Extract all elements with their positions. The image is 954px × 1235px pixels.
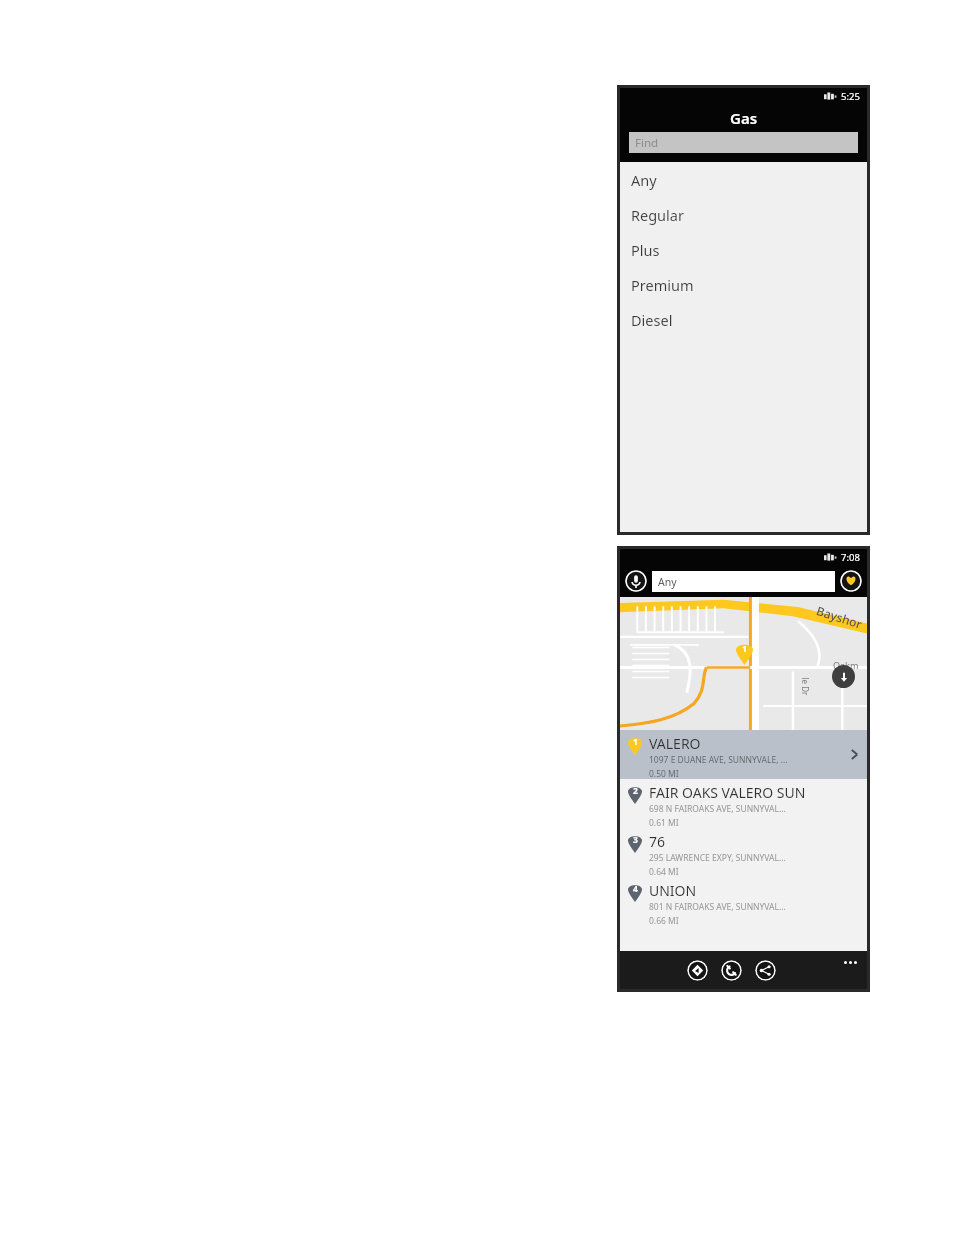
button[interactable]: Find <box>629 132 858 153</box>
staticText: 801 N FAIROAKS AVE, SUNNYVAL... <box>649 901 786 913</box>
button[interactable]: Voice search <box>625 570 647 592</box>
staticText: VALERO <box>649 734 701 753</box>
button[interactable]: Favorites <box>840 570 862 592</box>
button[interactable]: Download map <box>832 665 855 688</box>
button[interactable]: Share <box>755 960 776 981</box>
staticText: le Dr <box>799 677 810 695</box>
button[interactable]: Any <box>620 162 867 197</box>
button[interactable]: 4 <box>620 877 867 926</box>
staticText: 1 <box>633 736 638 747</box>
button[interactable]: 3 <box>620 828 867 877</box>
staticText: 3 <box>633 834 638 845</box>
staticText: Any <box>631 170 657 190</box>
button[interactable]: 2 <box>620 779 867 828</box>
staticText: 0.61 MI <box>649 817 679 828</box>
button[interactable]: Regular <box>620 197 867 232</box>
staticText: 7:08 <box>841 551 860 564</box>
staticText: Premium <box>631 275 694 295</box>
staticText: 5:25 <box>841 90 860 103</box>
staticText: Find <box>635 135 659 151</box>
staticText: 1097 E DUANE AVE, SUNNYVALE, ... <box>649 754 788 766</box>
staticText: 76 <box>649 832 666 851</box>
staticText: 0.66 MI <box>649 915 679 926</box>
button[interactable]: Premium <box>620 267 867 302</box>
staticText: 0.50 MI <box>649 768 679 779</box>
button[interactable]: Plus <box>620 232 867 267</box>
staticText: Plus <box>631 240 660 260</box>
staticText: 0.64 MI <box>649 866 679 877</box>
staticText: 698 N FAIROAKS AVE, SUNNYVAL... <box>649 803 786 815</box>
staticText: Bayshor <box>815 602 864 632</box>
button[interactable]: Call <box>721 960 742 981</box>
staticText: Gas <box>730 108 758 128</box>
staticText: UNION <box>649 881 697 900</box>
button[interactable]: Directions <box>687 960 708 981</box>
button[interactable]: Any <box>652 571 835 592</box>
button[interactable]: 1 <box>620 730 867 779</box>
staticText: 295 LAWRENCE EXPY, SUNNYVAL... <box>649 852 786 864</box>
staticText: 2 <box>633 785 638 796</box>
staticText: 4 <box>633 883 638 894</box>
staticText: FAIR OAKS VALERO SUN <box>649 783 806 802</box>
staticText: Any <box>658 575 677 589</box>
staticText: Regular <box>631 205 684 225</box>
button[interactable]: Diesel <box>620 302 867 337</box>
staticText: Diesel <box>631 310 673 330</box>
button[interactable]: More options <box>840 956 860 968</box>
staticText: 1 <box>742 643 747 655</box>
staticText: Oakm <box>833 659 859 671</box>
